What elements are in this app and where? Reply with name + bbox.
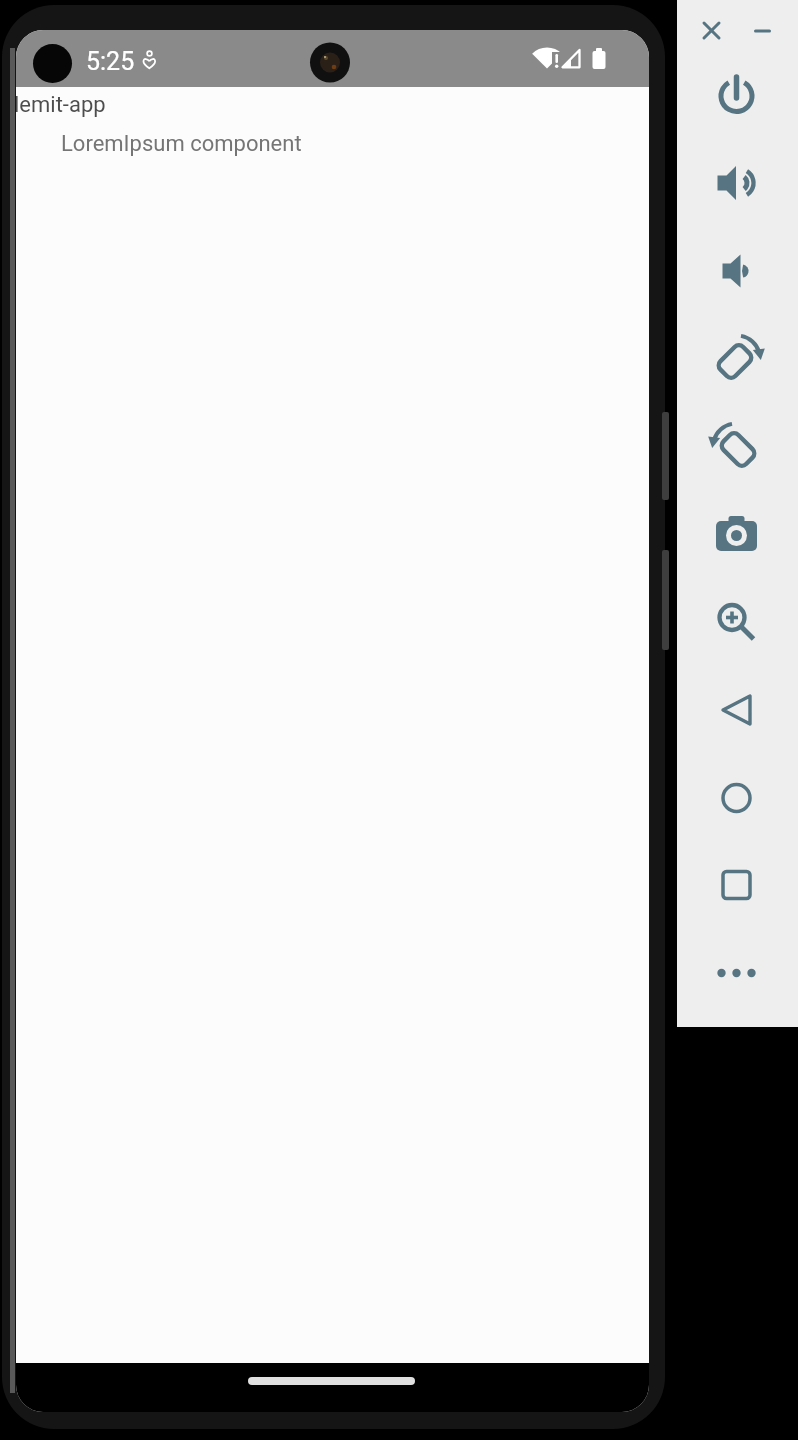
- staticText: 5:25: [86, 47, 135, 76]
- button[interactable]: [712, 423, 761, 471]
- button[interactable]: [712, 335, 761, 383]
- button[interactable]: [712, 598, 761, 646]
- button[interactable]: [712, 861, 761, 909]
- button[interactable]: [712, 774, 761, 822]
- button[interactable]: [712, 949, 761, 997]
- button[interactable]: [712, 510, 761, 558]
- button[interactable]: [248, 1377, 415, 1385]
- staticText: LoremIpsum component: [61, 131, 302, 157]
- button[interactable]: [699, 18, 724, 43]
- button[interactable]: [712, 686, 761, 734]
- button[interactable]: [712, 72, 761, 120]
- button[interactable]: [750, 18, 775, 43]
- button[interactable]: [712, 159, 761, 207]
- staticText: lemit-app: [16, 92, 106, 118]
- button[interactable]: [712, 247, 761, 295]
